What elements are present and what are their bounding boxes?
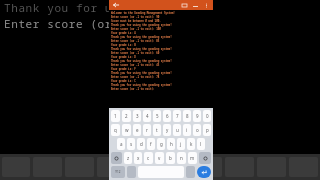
staticText: h bbox=[170, 141, 173, 147]
staticText: Enter score (or -1 to exit): 90 bbox=[111, 15, 160, 19]
staticText: t bbox=[156, 127, 158, 133]
staticText: Thank you for using bbox=[4, 0, 141, 15]
button[interactable]: i bbox=[183, 124, 191, 136]
staticText: 3 bbox=[136, 113, 139, 119]
button[interactable]: t bbox=[153, 124, 161, 136]
button[interactable]: 1 bbox=[111, 110, 120, 122]
staticText: Your grade is: A bbox=[111, 31, 136, 35]
staticText: Thank you for using the grading system! bbox=[111, 35, 172, 39]
button[interactable]: j bbox=[177, 138, 185, 150]
staticText: 9 bbox=[196, 113, 199, 119]
button[interactable]: v bbox=[155, 152, 164, 164]
button[interactable]: Period bbox=[186, 166, 195, 178]
button[interactable]: p bbox=[203, 124, 211, 136]
button[interactable]: c bbox=[144, 152, 153, 164]
staticText: Your grade is: B bbox=[111, 43, 136, 47]
staticText: i bbox=[186, 127, 188, 133]
button[interactable]: z bbox=[124, 152, 132, 164]
staticText: Enter score (or -1 to bbox=[4, 16, 156, 31]
button[interactable]: 7 bbox=[173, 110, 181, 122]
button[interactable]: l bbox=[197, 138, 205, 150]
staticText: v bbox=[158, 155, 161, 161]
staticText: Your grade is: F bbox=[111, 67, 136, 71]
button[interactable]: 6 bbox=[163, 110, 171, 122]
button[interactable]: w bbox=[122, 124, 131, 136]
staticText: c bbox=[147, 155, 150, 161]
button[interactable]: y bbox=[163, 124, 171, 136]
button[interactable]: r bbox=[143, 124, 151, 136]
button[interactable]: 2 bbox=[122, 110, 131, 122]
staticText: w bbox=[125, 127, 129, 133]
button[interactable]: Keyboard bbox=[180, 1, 188, 9]
staticText: Thank you for using the grading system! bbox=[111, 47, 172, 51]
button[interactable]: s bbox=[127, 138, 135, 150]
staticText: 0 bbox=[206, 113, 209, 119]
button[interactable]: h bbox=[167, 138, 175, 150]
staticText: o bbox=[196, 127, 199, 133]
staticText: 4 bbox=[146, 113, 149, 119]
button[interactable]: m bbox=[188, 152, 197, 164]
staticText: Thank you for using the grading system! bbox=[111, 23, 172, 27]
staticText: Thank you for using the grading system! bbox=[111, 59, 172, 63]
staticText: Enter score (or -1 to exit): 100 bbox=[111, 27, 161, 31]
staticText: n bbox=[180, 155, 183, 161]
staticText: 2 bbox=[125, 113, 128, 119]
button[interactable]: More options bbox=[202, 1, 210, 9]
button[interactable]: b bbox=[166, 152, 175, 164]
staticText: r bbox=[146, 127, 148, 133]
staticText: u bbox=[176, 127, 179, 133]
button[interactable]: Minimize bbox=[191, 1, 199, 9]
staticText: 8 bbox=[186, 113, 189, 119]
button[interactable]: Comma bbox=[127, 166, 136, 178]
button[interactable]: u bbox=[173, 124, 181, 136]
staticText: g bbox=[160, 141, 163, 147]
button[interactable]: f bbox=[147, 138, 155, 150]
staticText: p bbox=[206, 127, 209, 133]
button[interactable]: 3 bbox=[133, 110, 141, 122]
staticText: k bbox=[190, 141, 193, 147]
button[interactable]: q bbox=[111, 124, 120, 136]
staticText: Your grade is: C bbox=[111, 79, 136, 83]
button[interactable]: Shift bbox=[111, 152, 122, 164]
button[interactable]: Symbols bbox=[111, 166, 125, 178]
button[interactable]: 8 bbox=[183, 110, 191, 122]
button[interactable]: 4 bbox=[143, 110, 151, 122]
staticText: Enter score (or -1 to exit): bbox=[111, 87, 157, 91]
staticText: !?12 bbox=[115, 170, 121, 174]
staticText: l bbox=[200, 141, 202, 147]
button[interactable]: x bbox=[134, 152, 142, 164]
button[interactable]: Backspace bbox=[199, 152, 211, 164]
button[interactable]: k bbox=[187, 138, 195, 150]
staticText: z bbox=[127, 155, 130, 161]
staticText: Enter score (or -1 to exit): 78 bbox=[111, 75, 160, 79]
staticText: q bbox=[114, 127, 117, 133]
button[interactable]: n bbox=[177, 152, 186, 164]
staticText: Your grade is: D bbox=[111, 55, 136, 59]
button[interactable]: 0 bbox=[203, 110, 211, 122]
staticText: f bbox=[150, 141, 152, 147]
button[interactable]: o bbox=[193, 124, 201, 136]
button[interactable]: e bbox=[133, 124, 141, 136]
staticText: Enter score (or -1 to exit): 60 bbox=[111, 51, 160, 55]
staticText: Thank you for using the grading system! bbox=[111, 83, 172, 87]
staticText: m bbox=[190, 155, 195, 161]
staticText: Score must be between 0 and 100. bbox=[111, 19, 161, 23]
staticText: s bbox=[130, 141, 133, 147]
button[interactable]: d bbox=[137, 138, 145, 150]
staticText: 6 bbox=[166, 113, 169, 119]
staticText: Enter score (or -1 to exit): 85 bbox=[111, 39, 160, 43]
staticText: a bbox=[120, 141, 123, 147]
staticText: x bbox=[137, 155, 140, 161]
button[interactable]: a bbox=[117, 138, 125, 150]
button[interactable]: 5 bbox=[153, 110, 161, 122]
staticText: Enter score (or -1 to exit): 45 bbox=[111, 63, 160, 67]
staticText: 7 bbox=[176, 113, 179, 119]
staticText: Welcome to the Grading Management System… bbox=[111, 11, 175, 15]
button[interactable]: g bbox=[157, 138, 165, 150]
staticText: y bbox=[166, 127, 169, 133]
button[interactable]: 9 bbox=[193, 110, 201, 122]
staticText: 1 bbox=[114, 113, 117, 119]
button[interactable]: Back bbox=[112, 1, 120, 9]
button[interactable]: Enter bbox=[197, 166, 211, 178]
